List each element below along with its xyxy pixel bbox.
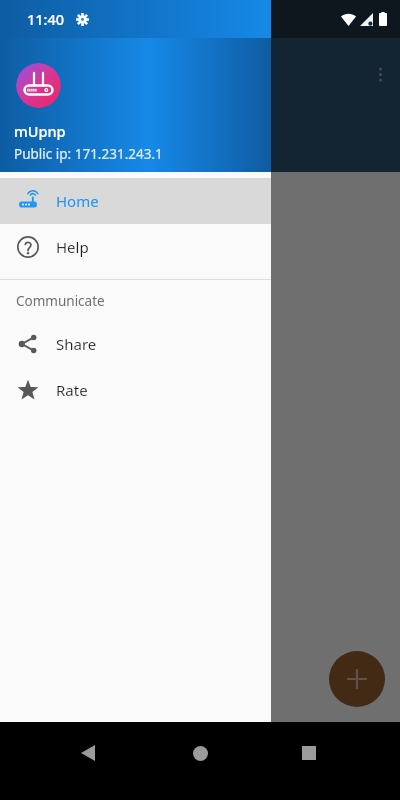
staticText: Share (56, 334, 97, 354)
button[interactable]: Recents (294, 738, 324, 768)
staticText: Rate (56, 380, 88, 400)
staticText: Help (56, 237, 89, 257)
staticText: mUpnp (14, 121, 66, 141)
staticText: Public ip: 171.231.243.1 (14, 145, 163, 163)
button[interactable]: Home (0, 178, 271, 224)
button[interactable]: Help (0, 224, 271, 270)
button[interactable]: Rate (0, 367, 271, 413)
button[interactable]: Share (0, 321, 271, 367)
button[interactable]: Back (73, 738, 103, 768)
staticText: 11:40 (27, 9, 65, 29)
button[interactable]: Add (329, 651, 385, 707)
button[interactable]: More options (364, 58, 396, 90)
staticText: Home (56, 191, 99, 211)
staticText: Communicate (16, 292, 105, 310)
button[interactable]: Home (185, 738, 215, 768)
